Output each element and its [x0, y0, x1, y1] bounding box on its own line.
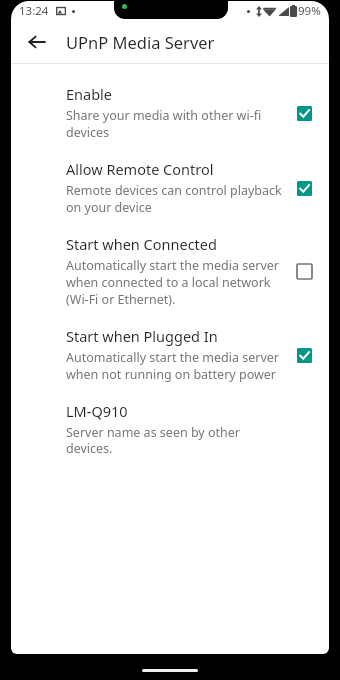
staticText: Allow Remote Control [66, 159, 214, 179]
staticText: 13:24 [19, 3, 49, 19]
staticText: Remote devices can control playback [66, 182, 282, 199]
staticText: 99% [298, 3, 321, 19]
staticText: Automatically start the media server [66, 257, 279, 274]
button[interactable]: Checked [290, 99, 318, 127]
staticText: Automatically start the media server [66, 349, 279, 366]
button[interactable]: Checked [290, 341, 318, 369]
staticText: Start when Connected [66, 234, 217, 254]
staticText: Share your media with other wi-fi [66, 107, 262, 124]
staticText: on your device [66, 199, 152, 216]
staticText: Server name as seen by other devices. [66, 424, 283, 457]
staticText: UPnP Media Server [66, 31, 215, 53]
staticText: LM-Q910 [66, 401, 128, 421]
button[interactable]: Allow Remote Control [11, 150, 329, 225]
button[interactable]: Start when Connected [11, 225, 329, 317]
staticText: Enable [66, 84, 112, 104]
button[interactable]: Checked [290, 174, 318, 202]
staticText: devices [66, 124, 110, 141]
button[interactable]: Unchecked [290, 257, 318, 285]
staticText: when not running on battery power [66, 366, 276, 383]
button[interactable]: Enable [11, 75, 329, 150]
staticText: when connected to a local network [66, 274, 271, 291]
button[interactable]: LM-Q910 [11, 392, 329, 466]
button[interactable]: Back [21, 26, 53, 58]
staticText: (Wi-Fi or Ethernet). [66, 291, 176, 308]
button[interactable]: Start when Plugged In [11, 317, 329, 392]
staticText: Start when Plugged In [66, 326, 218, 346]
